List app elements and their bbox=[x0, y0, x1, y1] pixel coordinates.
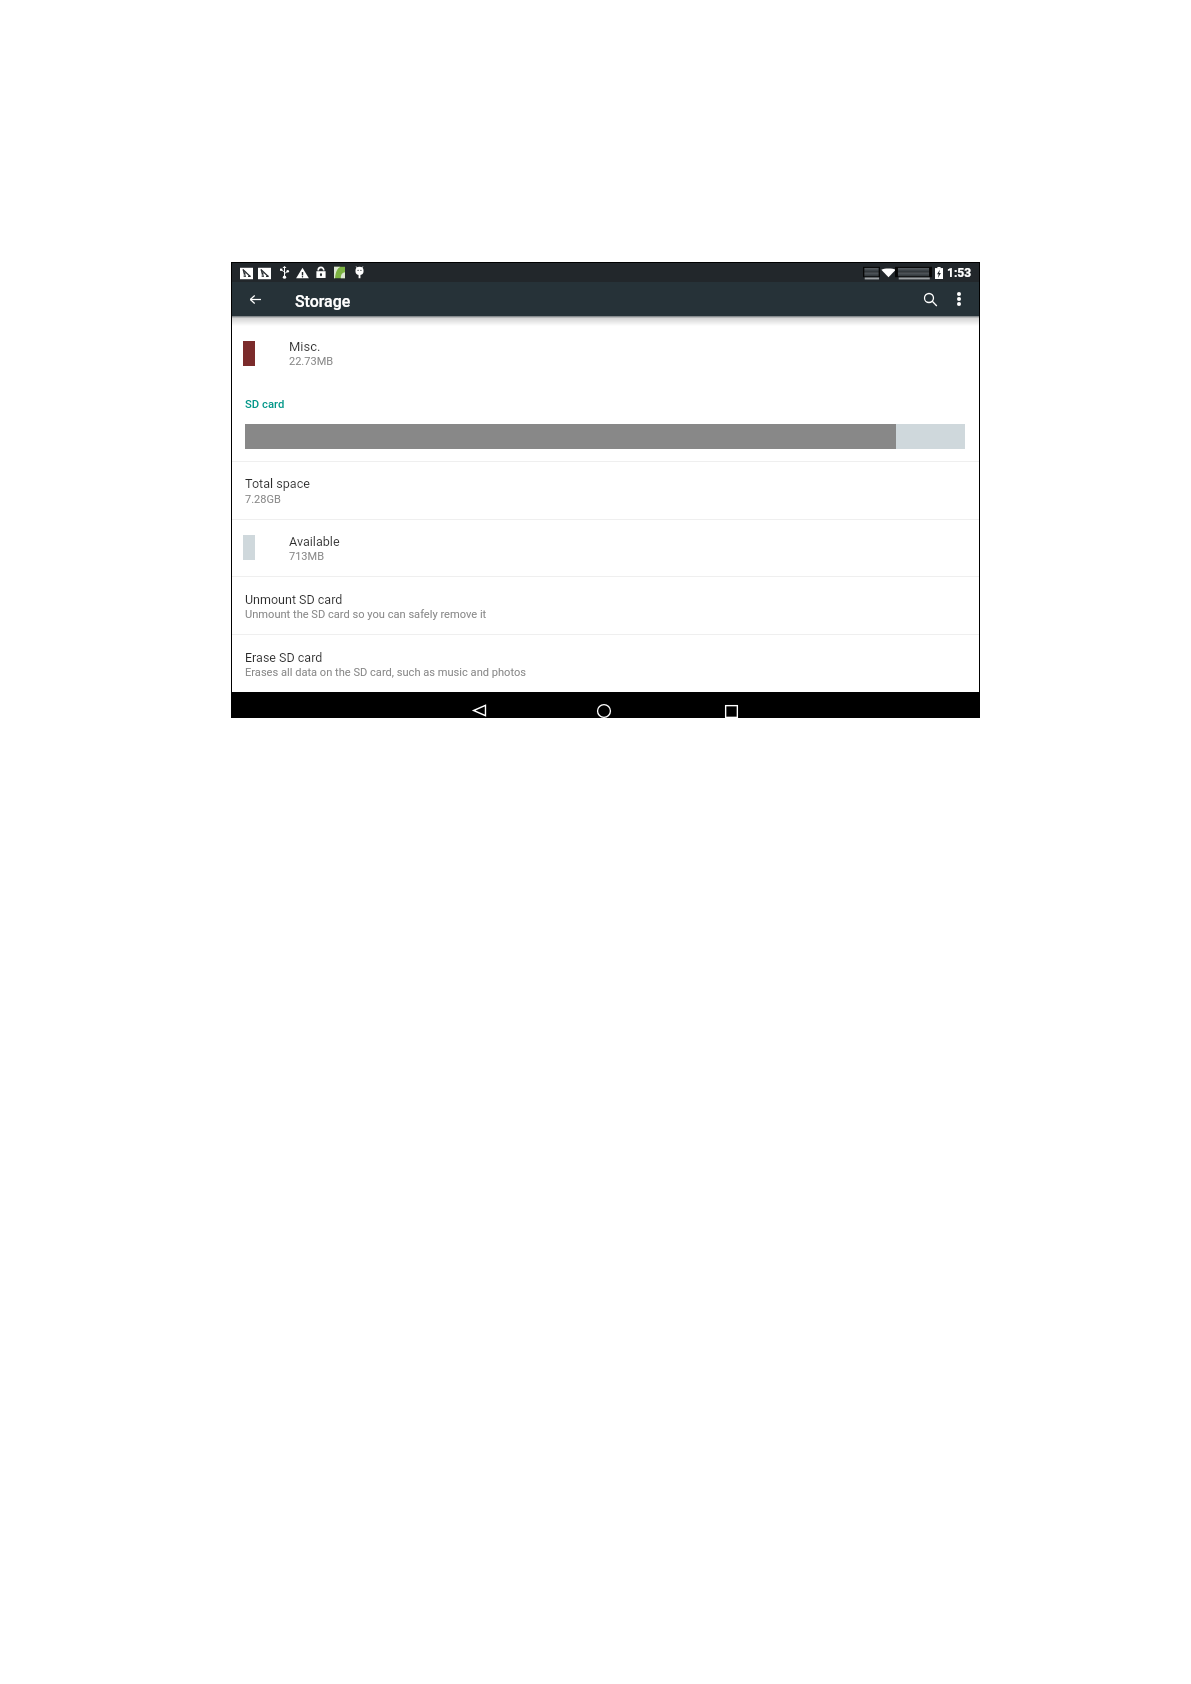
button[interactable]: Search bbox=[914, 283, 946, 315]
button[interactable]: Available bbox=[232, 519, 979, 577]
staticText: Erase SD card bbox=[245, 650, 323, 665]
button[interactable]: Home bbox=[560, 692, 648, 718]
button[interactable]: Unmount SD card bbox=[232, 576, 979, 634]
staticText: Unmount SD card bbox=[245, 592, 343, 607]
staticText: Misc. bbox=[289, 339, 321, 354]
button[interactable]: Recent apps bbox=[687, 692, 775, 718]
staticText: Total space bbox=[245, 476, 310, 491]
staticText: 713MB bbox=[289, 550, 325, 563]
staticText: Storage bbox=[295, 292, 351, 311]
button[interactable]: More options bbox=[946, 286, 972, 312]
staticText: 1:53 bbox=[947, 266, 972, 280]
button[interactable]: Back bbox=[435, 692, 523, 718]
button[interactable]: Back bbox=[240, 284, 270, 314]
button[interactable]: Total space bbox=[232, 461, 979, 519]
button[interactable]: Misc. bbox=[232, 325, 979, 383]
staticText: Erases all data on the SD card, such as … bbox=[245, 666, 526, 679]
staticText: 22.73MB bbox=[289, 355, 334, 368]
staticText: SD card bbox=[245, 398, 285, 411]
staticText: 7.28GB bbox=[245, 493, 281, 506]
staticText: Available bbox=[289, 534, 340, 549]
staticText: Unmount the SD card so you can safely re… bbox=[245, 608, 487, 621]
button[interactable]: Erase SD card bbox=[232, 634, 979, 692]
